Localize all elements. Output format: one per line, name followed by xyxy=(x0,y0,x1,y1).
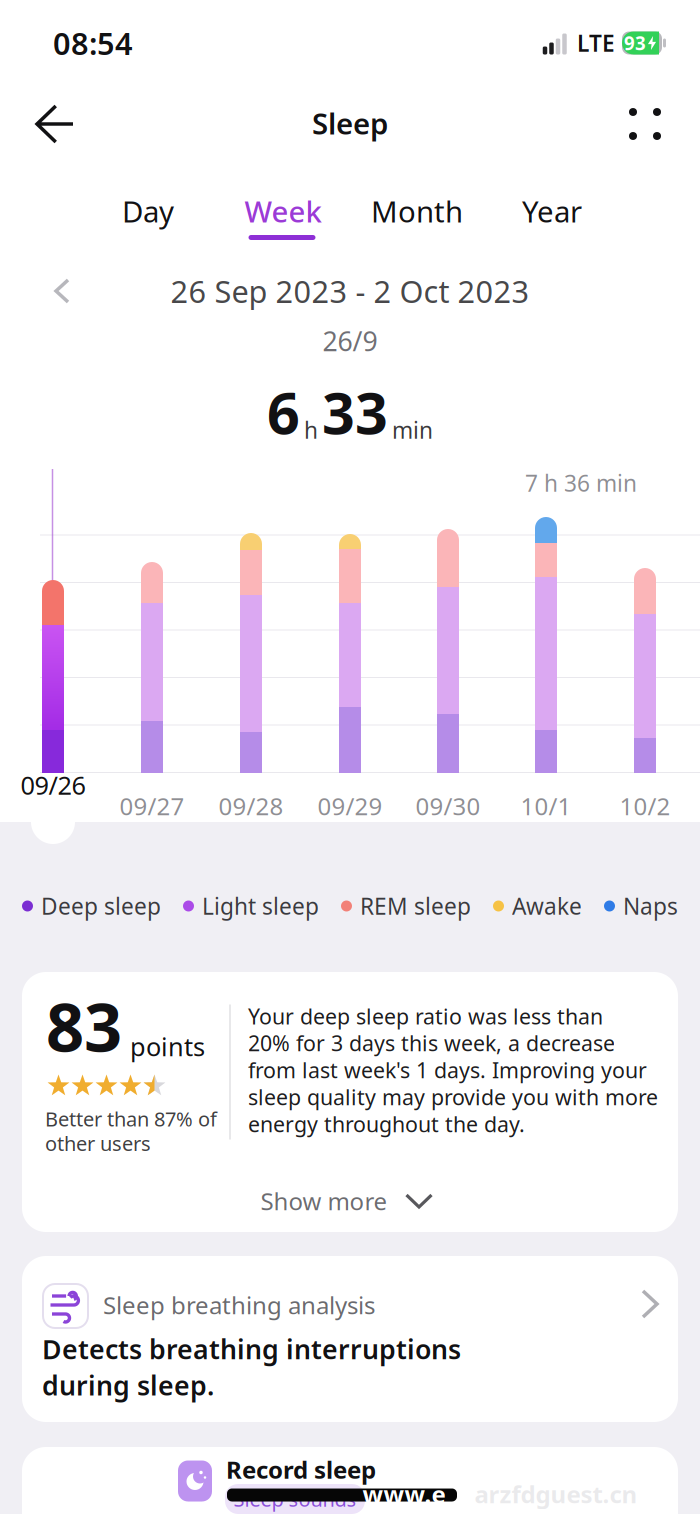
staticText: Awake xyxy=(512,891,582,921)
staticText: min xyxy=(392,415,433,445)
staticText: 09/29 xyxy=(317,790,382,822)
staticText: Week xyxy=(244,191,321,230)
staticText: 26/9 xyxy=(322,323,377,359)
staticText: 93 xyxy=(624,31,646,55)
staticText: Record sleep xyxy=(226,1454,376,1485)
button[interactable]: Sleep breathing analysis xyxy=(0,0,700,1514)
staticText: other users xyxy=(45,1130,151,1157)
button[interactable]: Record sleep xyxy=(178,1460,448,1514)
staticText: Detects breathing interruptions xyxy=(42,1331,461,1366)
staticText: Day xyxy=(122,191,174,230)
staticText: arzfdguest.cn xyxy=(474,1478,637,1510)
staticText: 7 h 36 min xyxy=(525,468,637,498)
staticText: 10/2 xyxy=(619,790,670,822)
staticText: 33 xyxy=(322,374,388,450)
staticText: Year xyxy=(522,191,582,230)
button[interactable] xyxy=(622,101,668,147)
staticText: Month xyxy=(371,191,463,230)
staticText: energy throughout the day. xyxy=(248,1110,525,1138)
button[interactable] xyxy=(29,98,81,150)
staticText: Light sleep xyxy=(202,891,319,921)
staticText: points xyxy=(130,1030,205,1063)
staticText: 83 xyxy=(46,982,122,1070)
staticText: REM sleep xyxy=(360,891,471,921)
staticText: www.e xyxy=(362,1478,445,1510)
staticText: 10/1 xyxy=(520,790,571,822)
staticText: sleep quality may provide you with more xyxy=(248,1083,658,1111)
staticText: Deep sleep xyxy=(41,891,161,921)
button[interactable]: Week xyxy=(228,186,338,236)
staticText: 20% for 3 days this week, a decrease xyxy=(248,1029,615,1057)
staticText: Naps xyxy=(623,891,678,921)
staticText: Sleep sounds xyxy=(233,1486,356,1512)
button[interactable]: Day xyxy=(93,186,203,236)
staticText: 09/27 xyxy=(119,790,184,822)
staticText: Sleep breathing analysis xyxy=(103,1289,375,1321)
staticText: 26 Sep 2023 - 2 Oct 2023 xyxy=(170,271,529,311)
staticText: h xyxy=(304,415,318,445)
button[interactable]: Show more xyxy=(250,1175,441,1227)
button[interactable]: Month xyxy=(357,186,477,236)
staticText: 09/26 xyxy=(20,768,85,802)
staticText: Better than 87% of xyxy=(45,1105,217,1132)
staticText: from last week's 1 days. Improving your xyxy=(248,1056,647,1084)
staticText: Sleep xyxy=(312,103,388,142)
staticText: 6 xyxy=(267,374,300,450)
staticText: 08:54 xyxy=(53,23,133,63)
staticText: LTE xyxy=(577,28,615,58)
staticText: 09/28 xyxy=(218,790,283,822)
staticText: during sleep. xyxy=(42,1367,214,1403)
staticText: 09/30 xyxy=(415,790,480,822)
staticText: Your deep sleep ratio was less than xyxy=(248,1002,603,1030)
staticText: Show more xyxy=(260,1185,387,1217)
button[interactable] xyxy=(46,270,78,312)
button[interactable]: Year xyxy=(497,186,607,236)
